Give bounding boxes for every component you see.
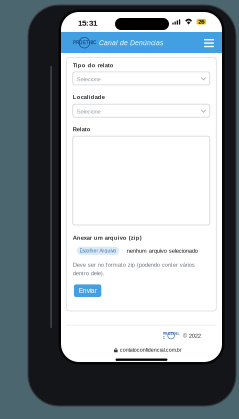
button[interactable]: Menu — [200, 35, 217, 51]
button[interactable]: Escolher Arquivo — [77, 247, 119, 255]
staticText: Relato — [73, 126, 91, 132]
staticText: dentro dele). — [73, 270, 105, 277]
staticText: PROETHIC — [163, 332, 180, 339]
staticText: Enviar — [79, 287, 97, 294]
staticText: PROETHIC — [73, 40, 96, 45]
staticText: contatoconfidencial.com.br — [120, 347, 182, 353]
button[interactable]: Enviar — [74, 284, 101, 297]
staticText: © 2022 — [183, 332, 201, 339]
staticText: nenhum arquivo selecionado — [127, 247, 198, 254]
staticText: 15:31 — [78, 19, 97, 27]
staticText: Canal de Denúncias — [99, 39, 163, 47]
staticText: Selecione — [76, 76, 100, 82]
staticText: Anexar um arquivo (zip) — [73, 235, 142, 241]
staticText: Escolher Arquivo — [79, 248, 116, 253]
staticText: Tipo do relato — [73, 62, 114, 68]
staticText: 26 — [198, 18, 204, 25]
staticText: Selecione — [76, 108, 100, 115]
staticText: Localidade — [73, 94, 105, 100]
staticText: Deve ser no formato zip (podendo conter … — [73, 261, 195, 268]
